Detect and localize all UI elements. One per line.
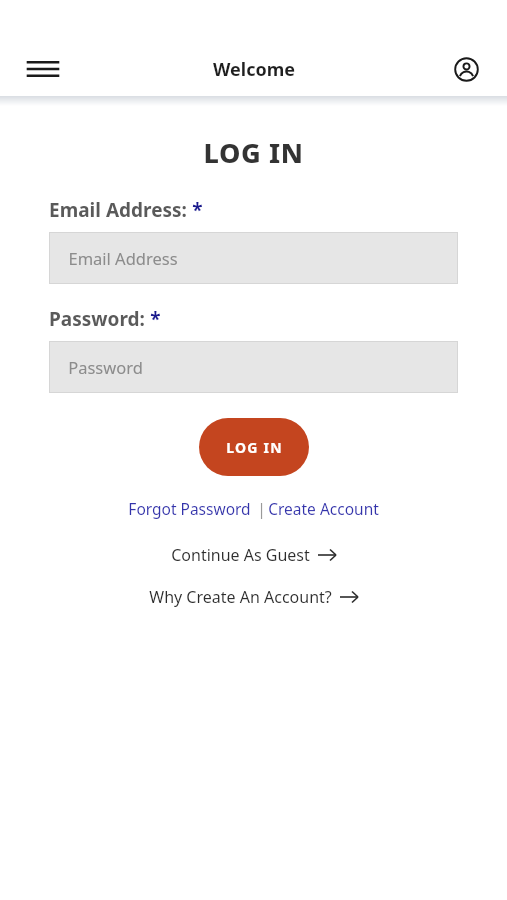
staticText: Welcome [213, 57, 295, 82]
button[interactable]: Continue As Guest [165, 541, 342, 569]
staticText: Password [68, 356, 143, 378]
staticText: LOG IN [203, 134, 304, 171]
staticText: * [150, 306, 161, 332]
staticText: Why Create An Account? [149, 586, 332, 608]
staticText: Email Address: [49, 197, 187, 223]
button[interactable]: Email Address [49, 232, 458, 284]
staticText: Continue As Guest [171, 544, 310, 566]
button[interactable]: Forgot Password [128, 498, 251, 519]
button[interactable]: Why Create An Account? [143, 583, 364, 611]
button[interactable]: Create Account [268, 498, 379, 519]
button[interactable]: LOG IN [199, 418, 309, 476]
staticText: Create Account [268, 498, 379, 519]
button[interactable]: Password [49, 341, 458, 393]
button[interactable]: Account [445, 48, 487, 90]
staticText: LOG IN [226, 438, 283, 457]
staticText: | [251, 498, 268, 519]
staticText: Password: [49, 306, 145, 332]
staticText: * [192, 197, 203, 223]
staticText: Forgot Password [128, 498, 251, 519]
button[interactable]: Open navigation menu [22, 48, 64, 90]
staticText: Email Address [68, 247, 178, 269]
